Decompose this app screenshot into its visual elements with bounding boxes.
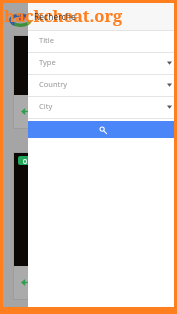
staticText: 0 bbox=[23, 157, 28, 165]
button[interactable]: Type bbox=[28, 53, 174, 75]
staticText: Type bbox=[39, 57, 56, 67]
staticText: City bbox=[39, 101, 53, 111]
staticText: Country bbox=[39, 79, 68, 89]
staticText: Recherche bbox=[34, 11, 76, 23]
staticText: hackcheat.org bbox=[4, 4, 123, 26]
staticText: Title bbox=[39, 35, 54, 45]
button[interactable]: City bbox=[28, 97, 174, 119]
button[interactable]: Title bbox=[28, 31, 174, 53]
button[interactable]: Search bbox=[28, 121, 174, 138]
button[interactable]: Country bbox=[28, 75, 174, 97]
staticText: Recherche bbox=[34, 11, 76, 23]
